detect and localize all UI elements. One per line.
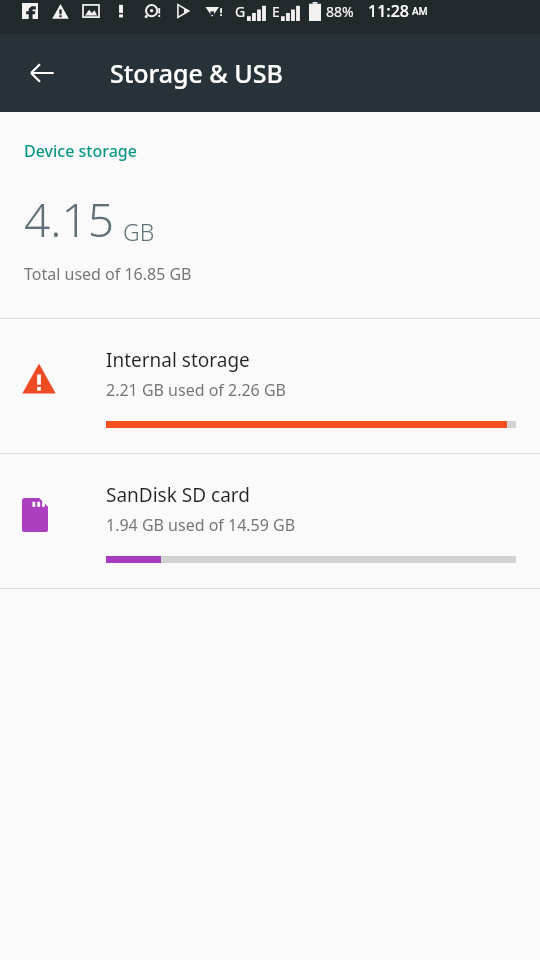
staticText: 4.15 [24, 188, 115, 251]
staticText: 88% [326, 2, 354, 21]
staticText: AM [412, 4, 428, 18]
staticText: SanDisk SD card [106, 482, 250, 508]
button[interactable]: Back [14, 45, 70, 101]
other: Internal storage warning [0, 319, 106, 453]
staticText: Storage & USB [110, 56, 283, 90]
staticText: GB [123, 216, 155, 247]
staticText: Total used of 16.85 GB [24, 263, 192, 285]
staticText: 2.21 GB used of 2.26 GB [106, 379, 286, 401]
staticText: 1.94 GB used of 14.59 GB [106, 514, 296, 536]
staticText: Internal storage [106, 347, 250, 373]
other: SD card [0, 454, 106, 588]
staticText: G [235, 2, 246, 21]
button[interactable]: Internal storage warning [0, 319, 540, 453]
staticText: E [272, 2, 280, 21]
staticText: 11:28 [368, 0, 409, 22]
staticText: Device storage [24, 140, 137, 162]
button[interactable]: SD card [0, 454, 540, 588]
